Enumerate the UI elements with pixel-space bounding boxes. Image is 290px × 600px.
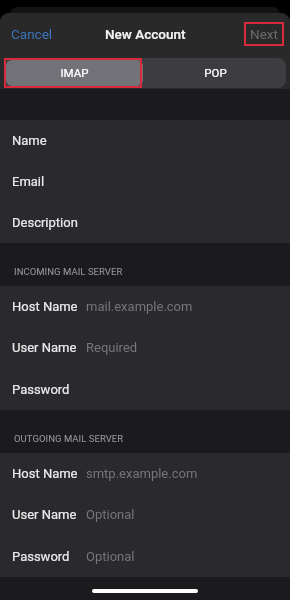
staticText: INCOMING MAIL SERVER xyxy=(14,266,123,277)
staticText: Host Name xyxy=(12,466,78,481)
staticText: POP xyxy=(204,66,227,79)
button[interactable]: Password xyxy=(0,368,290,410)
staticText: IMAP xyxy=(60,66,89,79)
staticText: Optional xyxy=(86,507,135,522)
button[interactable]: User Name xyxy=(0,327,290,368)
staticText: mail.example.com xyxy=(86,299,193,314)
button[interactable]: Host Name xyxy=(0,286,290,327)
button[interactable]: Host Name xyxy=(0,453,290,494)
button[interactable]: User Name xyxy=(0,494,290,535)
staticText: User Name xyxy=(12,507,77,522)
staticText: Required xyxy=(86,340,138,355)
button[interactable]: Password xyxy=(0,535,290,577)
staticText: Description xyxy=(12,215,78,230)
staticText: Email xyxy=(12,174,45,189)
staticText: Password xyxy=(12,549,70,564)
button[interactable]: IMAP xyxy=(6,60,143,86)
button[interactable]: Email xyxy=(0,161,290,202)
button[interactable]: Cancel xyxy=(0,19,63,51)
staticText: Cancel xyxy=(11,26,53,42)
staticText: Name xyxy=(12,133,47,148)
staticText: Next xyxy=(250,26,278,42)
staticText: New Account xyxy=(105,26,186,42)
button[interactable]: Name xyxy=(0,120,290,161)
staticText: User Name xyxy=(12,340,77,355)
button[interactable]: Next xyxy=(244,22,284,46)
staticText: Password xyxy=(12,382,70,397)
staticText: Optional xyxy=(86,549,135,564)
staticText: Host Name xyxy=(12,299,78,314)
button[interactable]: POP xyxy=(145,58,286,88)
button[interactable]: Description xyxy=(0,202,290,243)
staticText: OUTGOING MAIL SERVER xyxy=(14,433,124,444)
staticText: smtp.example.com xyxy=(86,466,198,481)
